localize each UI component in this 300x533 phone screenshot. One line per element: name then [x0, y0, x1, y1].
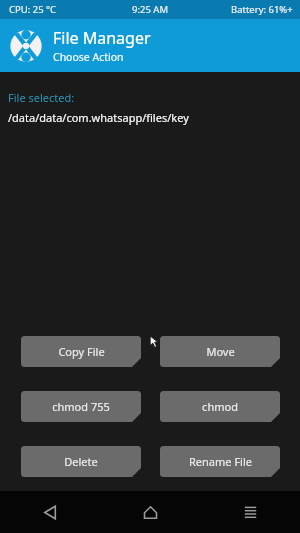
- staticText: chmod: [202, 399, 238, 414]
- staticText: chmod 755: [52, 399, 110, 414]
- button[interactable]: Back: [0, 491, 100, 533]
- other: File Manager logo: [9, 29, 43, 63]
- button[interactable]: Home: [100, 491, 200, 533]
- button[interactable]: chmod: [160, 391, 280, 422]
- button[interactable]: Delete: [21, 446, 141, 477]
- staticText: Choose Action: [53, 50, 124, 64]
- staticText: /data/data/com.whatsapp/files/key: [8, 110, 189, 125]
- button[interactable]: Rename File: [160, 446, 280, 477]
- staticText: Move: [206, 344, 235, 359]
- button[interactable]: Recent apps: [200, 491, 300, 533]
- staticText: 9:25 AM: [132, 3, 169, 16]
- staticText: CPU: 25 °C: [9, 3, 57, 16]
- staticText: Copy File: [58, 344, 105, 359]
- button[interactable]: Move: [160, 336, 280, 367]
- staticText: Battery: 61%+: [231, 3, 293, 16]
- button[interactable]: Copy File: [21, 336, 141, 367]
- staticText: Delete: [64, 454, 98, 469]
- staticText: File selected:: [8, 90, 75, 105]
- staticText: File Manager: [53, 27, 151, 49]
- button[interactable]: chmod 755: [21, 391, 141, 422]
- staticText: Rename File: [189, 454, 252, 469]
